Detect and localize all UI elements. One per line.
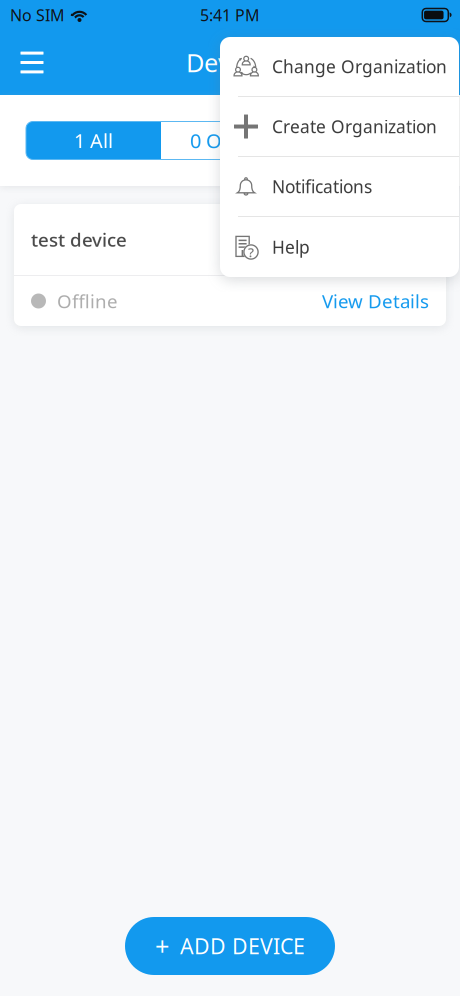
staticText: 0 Online: [190, 127, 267, 154]
staticText: Create Organization: [272, 115, 437, 138]
staticText: Help: [272, 235, 310, 258]
staticText: 1 Offline: [324, 127, 403, 154]
button[interactable]: +: [125, 917, 335, 975]
staticText: Devices: [186, 46, 276, 79]
button[interactable]: View Details: [322, 289, 429, 313]
button[interactable]: Change Organization: [220, 37, 459, 97]
button[interactable]: Notifications: [220, 157, 459, 217]
button[interactable]: ?: [220, 217, 459, 277]
staticText: Offline: [57, 289, 118, 313]
staticText: No SIM: [10, 4, 65, 26]
button[interactable]: 0 Online: [161, 121, 296, 159]
button[interactable]: Create Organization: [220, 97, 459, 157]
staticText: 5:41 PM: [200, 4, 260, 26]
staticText: ADD DEVICE: [180, 932, 305, 960]
staticText: test device: [31, 227, 127, 252]
button[interactable]: Menu: [0, 30, 64, 95]
staticText: View Details: [322, 289, 429, 313]
staticText: ?: [248, 243, 254, 261]
staticText: Notifications: [272, 175, 372, 198]
staticText: Change Organization: [272, 55, 447, 78]
button[interactable]: 1 All: [26, 121, 161, 159]
button[interactable]: 1 Offline: [296, 121, 431, 159]
staticText: 1 All: [74, 127, 113, 154]
staticText: +: [155, 929, 169, 963]
